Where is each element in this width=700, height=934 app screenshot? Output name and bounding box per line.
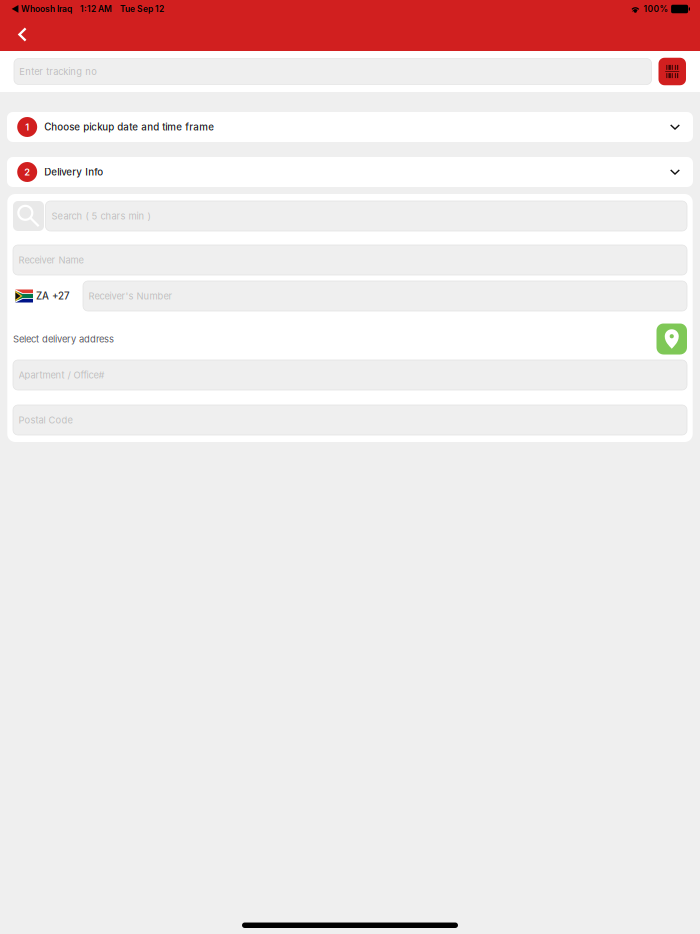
button[interactable]: Back [0, 18, 45, 51]
staticText: 1:12 AM [80, 4, 112, 14]
button[interactable]: ZA +27 [13, 281, 70, 311]
staticText: Receiver's Number [89, 290, 173, 302]
button[interactable]: Postal Code [13, 405, 687, 435]
staticText: 1 [25, 121, 29, 133]
button[interactable]: Receiver Name [13, 245, 687, 275]
staticText: ◀ Whoosh Iraq [11, 4, 72, 14]
button[interactable]: Choose delivery address on map [656, 323, 687, 354]
button[interactable]: Enter tracking no [14, 58, 651, 84]
staticText: Delivery Info [44, 166, 103, 178]
staticText: Enter tracking no [19, 66, 97, 77]
staticText: Postal Code [19, 414, 73, 426]
button[interactable]: Scan barcode [658, 58, 686, 85]
staticText: Receiver Name [19, 254, 84, 266]
staticText: Select delivery address [13, 333, 114, 345]
staticText: ZA +27 [36, 290, 70, 302]
button[interactable]: 1 [7, 112, 693, 142]
staticText: 2 [24, 166, 30, 178]
button[interactable]: Search ( 5 chars min ) [45, 201, 687, 231]
staticText: Choose pickup date and time frame [44, 121, 214, 133]
staticText: 100% [644, 4, 669, 14]
staticText: Tue Sep 12 [120, 4, 164, 14]
button[interactable]: Apartment / Office# [13, 360, 687, 390]
staticText: Search ( 5 chars min ) [51, 210, 150, 222]
button[interactable]: Receiver's Number [83, 281, 687, 311]
staticText: Apartment / Office# [19, 369, 105, 381]
button[interactable]: 2 [7, 157, 693, 187]
button[interactable]: Search [13, 201, 44, 231]
